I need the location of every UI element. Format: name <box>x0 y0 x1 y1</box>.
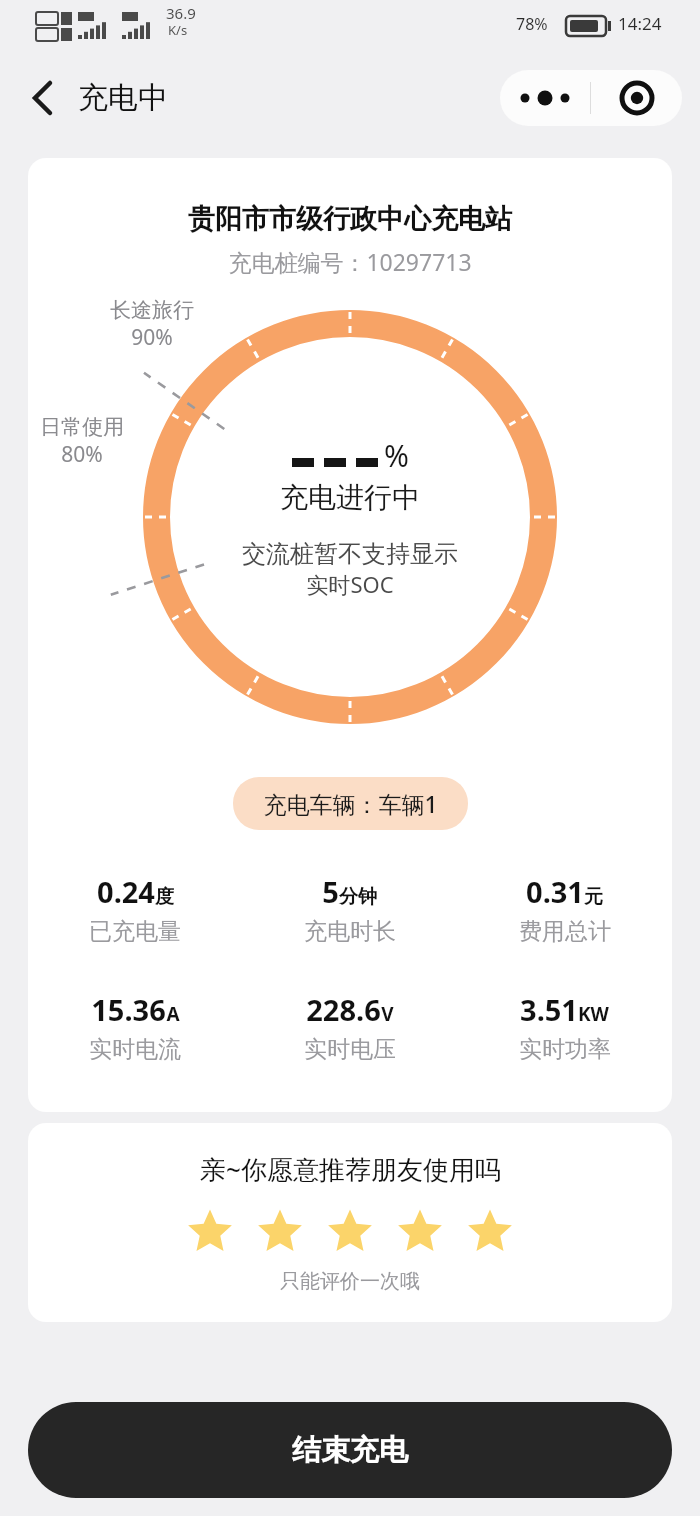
staticText: 充电桩编号：10297713 <box>228 246 472 277</box>
button[interactable]: Rate star <box>324 1205 376 1257</box>
staticText: 0.24 <box>97 872 155 911</box>
staticText: 15.36 <box>91 990 166 1029</box>
staticText: 亲~你愿意推荐朋友使用吗 <box>200 1151 501 1187</box>
staticText: 36.9 <box>166 3 196 23</box>
staticText: 实时电流 <box>89 1035 181 1064</box>
staticText: 80% <box>61 440 103 469</box>
staticText: 0.31 <box>526 872 584 911</box>
staticText: 充电车辆：车辆1 <box>263 788 438 819</box>
staticText: 实时SOC <box>306 569 394 599</box>
button[interactable]: Close <box>591 70 682 126</box>
staticText: A <box>166 1001 180 1027</box>
button[interactable]: Rate star <box>184 1205 236 1257</box>
staticText: 5 <box>322 872 339 911</box>
button[interactable]: 充电车辆：车辆1 <box>233 777 468 830</box>
staticText: 充电时长 <box>304 917 396 946</box>
staticText: 结束充电 <box>292 1432 408 1469</box>
staticText: KW <box>578 1001 609 1027</box>
staticText: K/s <box>168 21 188 39</box>
staticText: 元 <box>584 885 603 909</box>
staticText: 90% <box>131 323 173 352</box>
staticText: 3.51 <box>520 990 578 1029</box>
button[interactable]: Rate star <box>254 1205 306 1257</box>
button[interactable]: Rate star <box>394 1205 446 1257</box>
staticText: 充电中 <box>78 79 168 117</box>
staticText: 实时功率 <box>519 1035 611 1064</box>
button[interactable]: Back <box>14 70 70 126</box>
button[interactable]: Rate star <box>464 1205 516 1257</box>
staticText: 长途旅行 <box>110 297 194 323</box>
staticText: 只能评价一次哦 <box>280 1269 420 1294</box>
staticText: 费用总计 <box>519 917 611 946</box>
staticText: % <box>384 435 409 476</box>
staticText: 78% <box>516 13 548 35</box>
staticText: 贵阳市市级行政中心充电站 <box>188 202 512 236</box>
staticText: 228.6 <box>306 990 381 1029</box>
staticText: 分钟 <box>339 885 377 909</box>
staticText: 度 <box>155 885 174 909</box>
staticText: 日常使用 <box>40 414 124 440</box>
button[interactable]: More <box>500 70 590 126</box>
staticText: 充电进行中 <box>280 480 420 515</box>
staticText: 14:24 <box>618 12 662 35</box>
staticText: 交流桩暂不支持显示 <box>242 539 458 569</box>
staticText: 实时电压 <box>304 1035 396 1064</box>
button[interactable]: 结束充电 <box>28 1402 672 1498</box>
staticText: V <box>381 1001 394 1027</box>
staticText: 已充电量 <box>89 917 181 946</box>
